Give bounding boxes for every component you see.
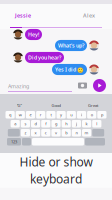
staticText: Jessie bbox=[15, 12, 31, 19]
button[interactable]: Jessie bbox=[0, 11, 46, 20]
staticText: y bbox=[60, 112, 62, 117]
staticText: b bbox=[65, 130, 67, 135]
staticText: w bbox=[19, 112, 22, 117]
staticText: 123 bbox=[11, 139, 17, 144]
button[interactable]: Good bbox=[37, 101, 74, 109]
button[interactable]: “G” bbox=[0, 101, 37, 109]
staticText: Hide or show bbox=[19, 154, 92, 170]
staticText: o bbox=[91, 112, 93, 117]
button[interactable]: Send bbox=[93, 79, 106, 92]
staticText: d bbox=[35, 121, 37, 126]
staticText: Good bbox=[51, 103, 60, 108]
staticText: g bbox=[55, 121, 57, 126]
staticText: v bbox=[55, 130, 57, 135]
staticText: z bbox=[24, 130, 26, 135]
staticText: h bbox=[65, 121, 67, 126]
staticText: q bbox=[9, 112, 11, 117]
staticText: What's up? bbox=[58, 42, 84, 49]
staticText: x bbox=[35, 130, 37, 135]
staticText: keyboard bbox=[30, 171, 82, 187]
button[interactable]: Camera bbox=[78, 81, 87, 90]
staticText: p bbox=[101, 112, 103, 117]
staticText: n bbox=[75, 130, 77, 135]
staticText: f bbox=[45, 121, 46, 126]
staticText: “G” bbox=[16, 103, 21, 108]
staticText: a bbox=[14, 121, 16, 126]
staticText: Did you hear? bbox=[28, 54, 61, 61]
staticText: l bbox=[96, 121, 97, 126]
button[interactable]: Alex bbox=[66, 11, 112, 20]
staticText: t bbox=[50, 112, 51, 117]
staticText: Great bbox=[88, 103, 98, 108]
staticText: i bbox=[81, 112, 82, 117]
staticText: Alex bbox=[83, 12, 95, 19]
staticText: Yes I did 🙂 bbox=[55, 66, 84, 73]
staticText: Amazing bbox=[8, 83, 29, 90]
staticText: k bbox=[86, 121, 88, 126]
staticText: s bbox=[24, 121, 26, 126]
staticText: r bbox=[40, 112, 42, 117]
staticText: Hey! bbox=[28, 31, 39, 38]
button[interactable]: Great bbox=[74, 101, 111, 109]
staticText: e bbox=[29, 112, 31, 117]
staticText: c bbox=[45, 130, 47, 135]
staticText: u bbox=[70, 112, 72, 117]
staticText: j bbox=[76, 121, 77, 126]
staticText: m bbox=[85, 130, 89, 135]
